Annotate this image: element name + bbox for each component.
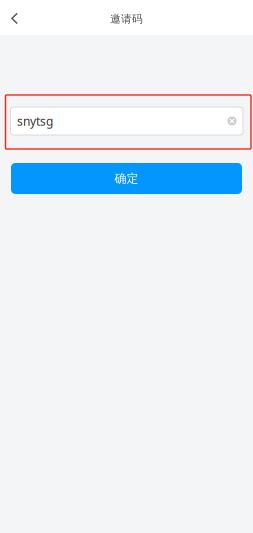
button[interactable]: Back — [0, 0, 29, 35]
staticText: 邀请码 — [110, 12, 143, 25]
button[interactable]: Clear text — [227, 116, 236, 125]
button[interactable]: snytsg — [10, 107, 243, 135]
staticText: snytsg — [17, 113, 53, 129]
button[interactable]: 确定 — [11, 163, 242, 194]
staticText: 确定 — [114, 171, 138, 186]
